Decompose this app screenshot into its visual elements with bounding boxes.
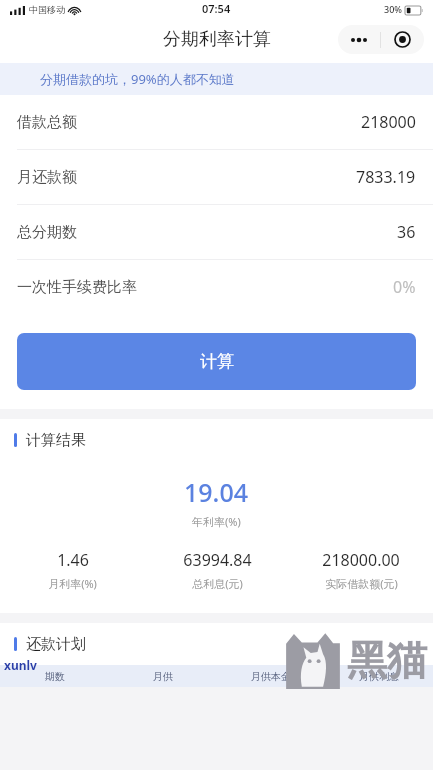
staticText: 黑猫 [347,635,427,685]
button[interactable]: 一次性手续费比率 [0,260,433,314]
button[interactable]: Close [381,31,424,48]
button[interactable]: 借款总额 [0,95,433,149]
staticText: 中国移动 [29,4,65,15]
staticText: 19.04 [184,475,249,509]
staticText: 总利息(元) [192,576,243,591]
staticText: 计算 [200,351,234,372]
staticText: 月利率(%) [48,576,97,591]
staticText: 期数 [45,670,65,683]
button[interactable]: 月还款额 [0,150,433,204]
staticText: 实际借款额(元) [325,576,398,591]
staticText: 218000 [361,111,416,133]
staticText: 借款总额 [17,113,77,132]
staticText: 月还款额 [17,168,77,187]
staticText: 36 [397,221,416,243]
staticText: 218000.00 [322,549,400,571]
staticText: xunlv [4,657,37,673]
button[interactable]: 总分期数 [0,205,433,259]
button[interactable]: 分期借款的坑，99%的人都不知道 [0,63,433,95]
staticText: 一次性手续费比率 [17,278,137,297]
staticText: 还款计划 [26,635,86,654]
staticText: 分期借款的坑，99%的人都不知道 [40,70,235,88]
staticText: 07:54 [202,1,231,16]
staticText: 月供利息 [359,670,399,683]
staticText: 1.46 [57,549,89,571]
button[interactable]: More [338,37,380,43]
staticText: 总分期数 [17,223,77,242]
staticText: 年利率(%) [192,514,241,529]
staticText: 月供本金 [251,670,291,683]
staticText: 分期利率计算 [163,28,271,51]
staticText: 计算结果 [26,431,86,450]
staticText: 63994.84 [183,549,252,571]
staticText: 30% [384,3,402,15]
staticText: 0% [393,276,416,298]
staticText: 7833.19 [356,166,416,188]
button[interactable]: 计算 [17,333,416,390]
staticText: 月供 [153,670,173,683]
